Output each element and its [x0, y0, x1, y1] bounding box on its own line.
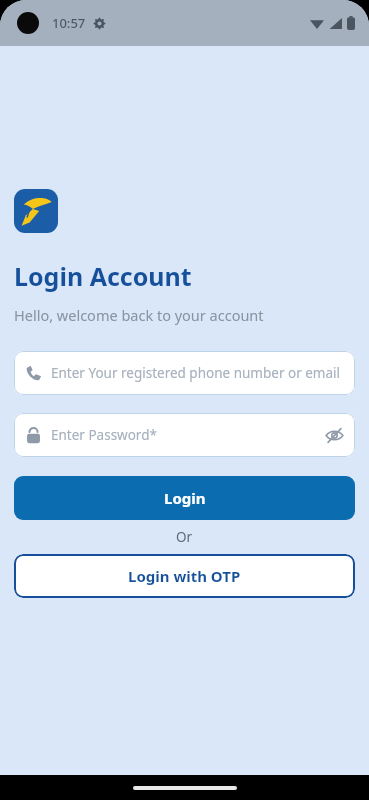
staticText: Enter Your registered phone number or em…	[51, 364, 340, 382]
staticText: Login	[164, 488, 206, 508]
other: Phone	[25, 365, 42, 382]
button[interactable]: Password	[14, 413, 355, 457]
staticText: 10:57	[52, 14, 86, 32]
staticText: Login with OTP	[128, 566, 241, 586]
staticText: Hello, welcome back to your account	[14, 305, 264, 325]
button[interactable]: Phone	[14, 351, 355, 395]
other: App logo	[14, 189, 58, 233]
staticText: Login Account	[14, 259, 192, 293]
button[interactable]: Login	[14, 476, 355, 520]
staticText: Or	[176, 528, 193, 546]
other: Password	[25, 427, 42, 444]
staticText: Enter Password*	[51, 426, 157, 444]
button[interactable]: Show password	[325, 426, 344, 445]
button[interactable]: Login with OTP	[14, 554, 355, 598]
